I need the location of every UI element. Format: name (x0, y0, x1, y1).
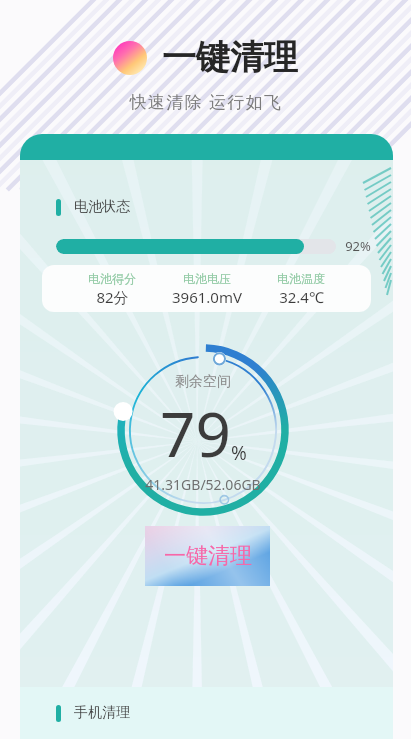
staticText: 电池电压 (183, 271, 231, 286)
staticText: 手机清理 (74, 704, 130, 722)
staticText: 快速清除 运行如飞 (129, 90, 283, 113)
staticText: 41.31GB/52.06GB (145, 475, 261, 494)
staticText: 一键清理 (164, 542, 252, 570)
staticText: 82分 (96, 287, 129, 307)
staticText: 一键清理 (162, 36, 298, 79)
staticText: 电池状态 (74, 198, 130, 216)
staticText: 电池得分 (88, 271, 136, 286)
staticText: 92% (345, 237, 371, 255)
staticText: 电池温度 (277, 271, 325, 286)
staticText: 剩余空间 (175, 373, 231, 391)
button[interactable]: 手机清理 (20, 687, 393, 739)
staticText: 3961.0mV (172, 287, 242, 307)
staticText: 32.4℃ (279, 287, 324, 307)
button[interactable]: 一键清理 (145, 526, 270, 586)
staticText: % (231, 440, 247, 466)
staticText: 79 (160, 391, 231, 475)
